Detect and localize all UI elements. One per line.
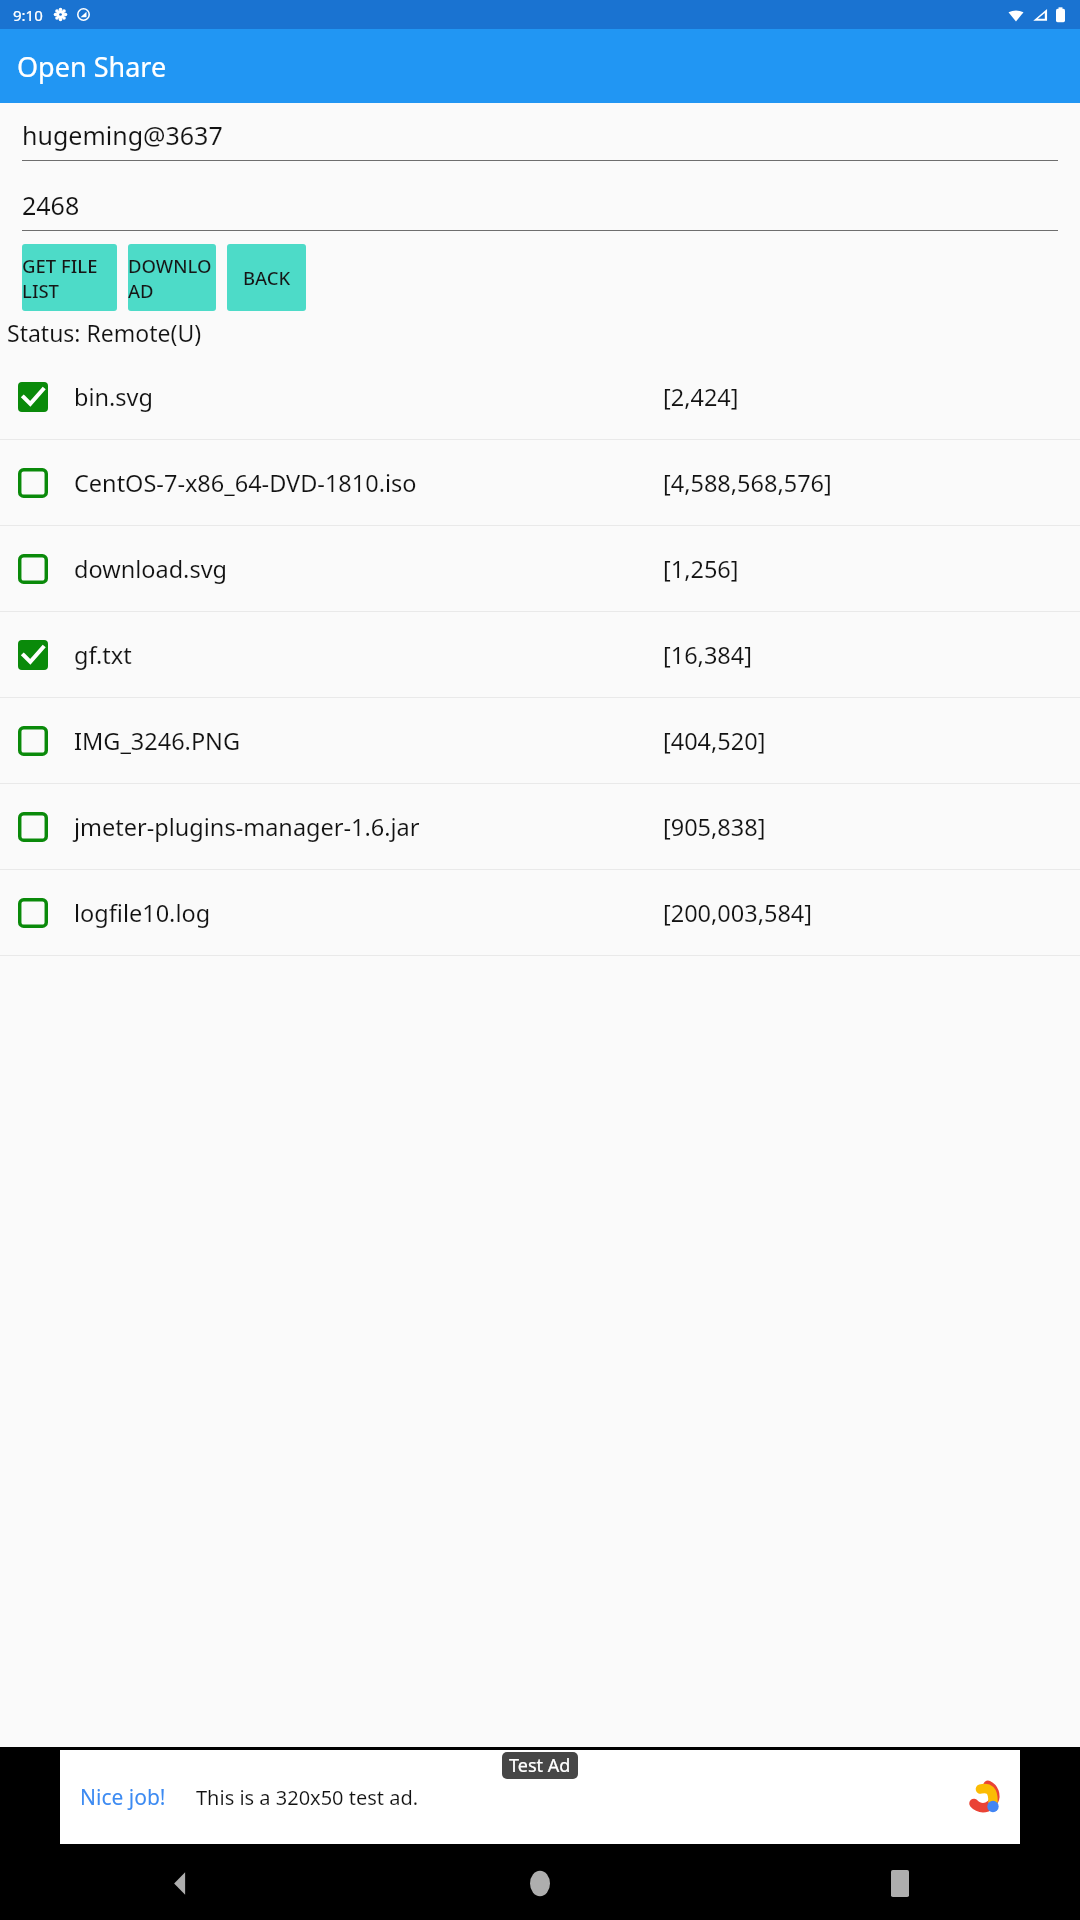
staticText: Status: Remote(U) [7,317,202,348]
staticText: logfile10.log [74,897,211,929]
staticText: 9:10 [13,5,43,25]
button[interactable]: GET FILE LIST [22,244,117,311]
staticText: CentOS-7-x86_64-DVD-1810.iso [74,467,417,499]
staticText: [200,003,584] [663,897,813,929]
button[interactable]: Not selected [0,698,1080,783]
staticText: hugeming@3637 [22,118,223,152]
other: Not selected [18,554,48,584]
button[interactable]: Not selected [0,784,1080,869]
other: Not selected [18,726,48,756]
button[interactable]: Not selected [0,870,1080,955]
staticText: Test Ad [509,1753,571,1778]
staticText: gf.txt [74,639,132,671]
button[interactable]: Selected [0,612,1080,697]
staticText: Open Share [17,48,167,85]
staticText: [404,520] [663,725,766,757]
staticText: This is a 320x50 test ad. [196,1784,419,1811]
staticText: [4,588,568,576] [663,467,832,499]
button[interactable]: Recent apps [720,1847,1080,1920]
staticText: BACK [243,265,291,290]
staticText: 2468 [22,188,80,222]
staticText: DOWNLOAD [128,253,216,303]
other: Selected [18,382,48,412]
other: Not selected [18,898,48,928]
button[interactable]: Not selected [0,526,1080,611]
staticText: [905,838] [663,811,766,843]
button[interactable]: Nice job! [60,1750,1020,1844]
staticText: bin.svg [74,381,153,413]
button[interactable]: 2468 [22,188,1058,231]
staticText: [1,256] [663,553,739,585]
button[interactable]: Not selected [0,440,1080,525]
staticText: jmeter-plugins-manager-1.6.jar [74,811,420,843]
staticText: [2,424] [663,381,739,413]
other: Selected [18,640,48,670]
other: Not selected [18,468,48,498]
staticText: GET FILE LIST [22,253,117,303]
staticText: Nice job! [80,1783,166,1812]
staticText: [16,384] [663,639,752,671]
button[interactable]: Home [360,1847,720,1920]
staticText: IMG_3246.PNG [74,725,241,757]
button[interactable]: Back [0,1847,360,1920]
button[interactable]: DOWNLOAD [128,244,216,311]
button[interactable]: BACK [227,244,306,311]
button[interactable]: Selected [0,354,1080,439]
staticText: download.svg [74,553,228,585]
other: Not selected [18,812,48,842]
button[interactable]: hugeming@3637 [22,118,1058,161]
